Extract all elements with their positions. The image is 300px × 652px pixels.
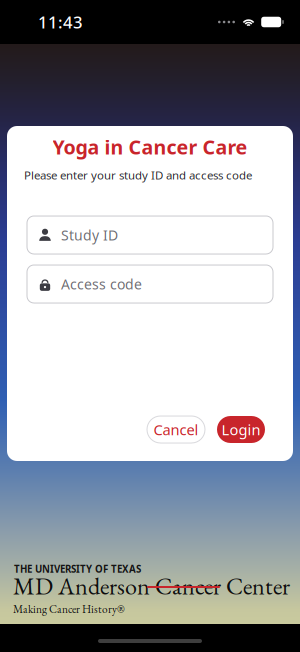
staticText: Access code (61, 274, 142, 294)
staticText: THE UNIVERSITY OF TEXAS (14, 562, 141, 576)
staticText: Login (221, 419, 260, 439)
staticText: MD Anderson Cancer Center (13, 570, 290, 602)
staticText: Making Cancer History® (13, 602, 125, 616)
button[interactable]: Cancel (147, 416, 205, 443)
staticText: Please enter your study ID and access co… (24, 167, 252, 183)
staticText: Cancel (153, 419, 198, 439)
staticText: 11:43 (38, 11, 83, 33)
button[interactable]: Login (217, 416, 265, 443)
staticText: Study ID (61, 225, 118, 245)
staticText: Yoga in Cancer Care (52, 134, 247, 160)
